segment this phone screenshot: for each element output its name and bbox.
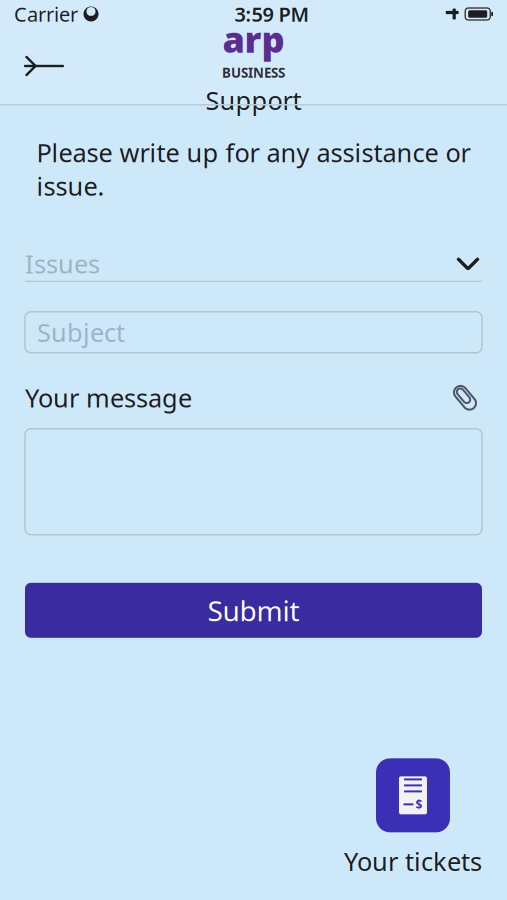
staticText: $ bbox=[415, 796, 422, 812]
staticText: 3:59 PM bbox=[235, 1, 310, 27]
button[interactable]: Back bbox=[12, 39, 76, 93]
staticText: Your message bbox=[25, 381, 192, 415]
staticText: Submit bbox=[207, 592, 299, 629]
button[interactable]: $ bbox=[344, 758, 482, 878]
staticText: Subject bbox=[37, 315, 125, 349]
staticText: Issues bbox=[25, 247, 100, 281]
staticText: Please write up for any assistance or is… bbox=[36, 135, 470, 203]
button[interactable] bbox=[25, 429, 482, 535]
staticText: Carrier bbox=[14, 1, 78, 27]
button[interactable]: Attach file bbox=[448, 379, 482, 417]
staticText: BUSINESS bbox=[222, 64, 285, 81]
staticText: Support bbox=[205, 83, 301, 117]
staticText: Your tickets bbox=[344, 844, 482, 878]
button[interactable]: Submit bbox=[25, 583, 482, 638]
staticText: arp bbox=[222, 15, 284, 63]
button[interactable]: Issues bbox=[25, 247, 482, 282]
button[interactable]: Subject bbox=[25, 312, 482, 353]
